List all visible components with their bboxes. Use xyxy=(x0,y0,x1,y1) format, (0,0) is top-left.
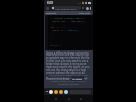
staticText: } xyxy=(50,31,53,34)
button[interactable]: Bookmark three xyxy=(59,90,63,94)
button[interactable]: Bookmark one xyxy=(49,90,53,94)
staticText: javascript xyxy=(46,12,57,15)
staticText: 8:08 xyxy=(47,1,53,5)
staticText: if you xyxy=(85,77,91,81)
staticText: new URL(f) xyxy=(71,19,86,22)
staticText: u = s; xyxy=(55,25,65,28)
staticText: { xyxy=(50,22,53,25)
staticText: Free Research Preview. ChatGPT may produ… xyxy=(47,74,90,86)
staticText: const xyxy=(52,28,61,31)
staticText: let xyxy=(50,25,55,28)
staticText: // Coerce fileURL into a string xyxy=(50,16,93,19)
staticText: } xyxy=(50,34,53,37)
staticText: Using a different object or function tha… xyxy=(46,51,91,75)
staticText: p xyxy=(61,28,63,31)
staticText: chat.openai.com/c xyxy=(55,7,77,10)
staticText: return s; xyxy=(50,43,63,46)
staticText: path(s) xyxy=(68,28,78,31)
button[interactable]: Account xyxy=(86,7,89,10)
staticText: = xyxy=(63,28,68,31)
staticText: = xyxy=(66,19,71,22)
button[interactable]: Try again xyxy=(71,76,84,81)
staticText: Try again xyxy=(72,77,83,80)
staticText: Vo xyxy=(78,1,81,4)
button[interactable] xyxy=(69,90,91,94)
staticText: Please let me know xyxy=(46,77,70,81)
button[interactable]: Assistant xyxy=(64,90,68,94)
staticText: url xyxy=(61,19,66,22)
staticText: const xyxy=(52,19,61,22)
button[interactable]: Bookmark two xyxy=(54,90,58,94)
staticText: } xyxy=(50,40,52,43)
button[interactable]: chat.openai.com/c xyxy=(51,6,81,10)
staticText: Copy code xyxy=(79,12,90,15)
